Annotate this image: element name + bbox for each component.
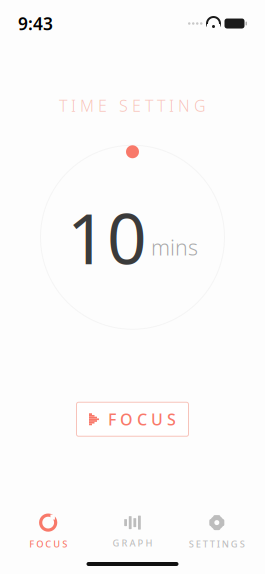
staticText: F O C U S [29,538,67,550]
staticText: T I M E S E T T I N G [59,95,206,116]
staticText: G R A P H [112,537,152,549]
button[interactable]: G R A P H [90,511,175,553]
button[interactable]: F O C U S [76,402,188,436]
button[interactable]: F O C U S [6,510,90,554]
staticText: F O C U S [108,409,176,430]
staticText: 10 [67,191,147,283]
button[interactable]: S E T T I N G S [175,510,259,554]
staticText: 9:43 [18,12,53,35]
staticText: S E T T I N G S [189,538,245,550]
staticText: mins [151,233,198,261]
